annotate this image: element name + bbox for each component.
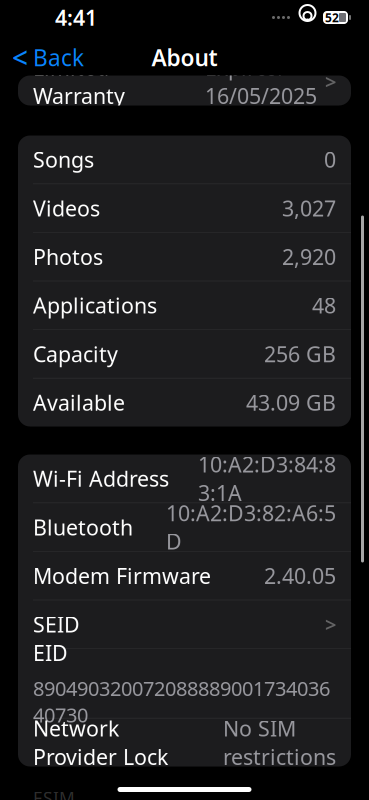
button[interactable]: Limited Warranty	[18, 57, 351, 105]
staticText: >	[325, 611, 336, 638]
staticText: 48	[312, 291, 336, 319]
staticText: Back	[33, 42, 84, 72]
staticText: Expires: 16/05/2025	[205, 53, 317, 110]
staticText: Bluetooth	[33, 513, 133, 541]
button[interactable]: Applications	[18, 281, 351, 329]
button[interactable]: <	[0, 37, 94, 77]
staticText: Limited Warranty	[33, 53, 125, 110]
button[interactable]: Wi-Fi Address	[18, 454, 351, 502]
staticText: 10:A2:D3:82:A6:5D	[166, 499, 336, 555]
staticText: 2.40.05	[264, 561, 336, 590]
button[interactable]: Available	[18, 378, 351, 426]
staticText: Songs	[33, 145, 94, 174]
staticText: 52	[325, 9, 339, 25]
staticText: ESIM	[33, 786, 75, 800]
button[interactable]: Photos	[18, 233, 351, 281]
staticText: 256 GB	[264, 340, 336, 368]
staticText: 43.09 GB	[246, 388, 336, 417]
staticText: 4:41	[55, 3, 97, 32]
staticText: EID	[33, 639, 68, 667]
button[interactable]: Songs	[18, 135, 351, 183]
button[interactable]: Capacity	[18, 330, 351, 378]
button[interactable]: Modem Firmware	[18, 552, 351, 600]
staticText: SEID	[33, 610, 80, 638]
staticText: 89049032007208888900173403640730	[33, 675, 330, 728]
staticText: Modem Firmware	[33, 561, 211, 590]
staticText: <	[12, 39, 28, 76]
button[interactable]: Bluetooth	[18, 503, 351, 551]
staticText: 0	[324, 145, 336, 174]
staticText: 2,920	[282, 242, 336, 271]
staticText: Capacity	[33, 340, 118, 368]
button[interactable]: EID	[18, 649, 351, 718]
staticText: Available	[33, 388, 125, 417]
staticText: No SIM restrictions	[223, 714, 336, 771]
button[interactable]: SEID	[18, 600, 351, 648]
staticText: 3,027	[282, 194, 336, 222]
staticText: Photos	[33, 242, 103, 271]
button[interactable]: Videos	[18, 184, 351, 232]
staticText: Wi-Fi Address	[33, 464, 169, 493]
staticText: Network Provider Lock	[33, 714, 168, 771]
staticText: About	[151, 42, 217, 72]
button[interactable]: Network Provider Lock	[18, 718, 351, 766]
staticText: Videos	[33, 194, 100, 222]
staticText: Applications	[33, 291, 157, 319]
staticText: >	[325, 68, 336, 95]
staticText: 10:A2:D3:84:83:1A	[198, 450, 336, 507]
